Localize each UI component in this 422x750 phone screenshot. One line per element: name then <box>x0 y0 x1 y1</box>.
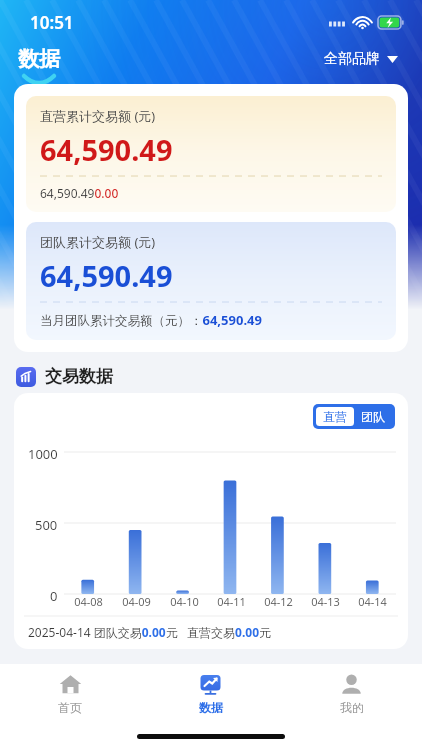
staticText: 04-14 <box>358 594 387 609</box>
staticText: 1000 <box>28 445 58 463</box>
staticText: 04-12 <box>264 594 293 609</box>
button[interactable]: 首页 <box>0 664 140 726</box>
other: 数据 <box>198 672 223 697</box>
staticText: 首页 <box>58 700 82 715</box>
staticText: 2025-04-14 团队交易0.00元 直营交易0.00元 <box>28 624 272 640</box>
other: 首页 <box>58 672 83 697</box>
staticText: 500 <box>35 516 58 534</box>
staticText: 数据 <box>18 46 60 72</box>
staticText: 64,590.49 <box>40 256 173 295</box>
staticText: 0 <box>50 587 58 605</box>
staticText: 04-08 <box>74 594 103 609</box>
staticText: 64,590.490.00 <box>40 185 119 201</box>
staticText: 04-09 <box>122 594 151 609</box>
staticText: 我的 <box>340 700 364 715</box>
button[interactable]: 我的 <box>281 664 422 726</box>
button[interactable]: 全部品牌 <box>318 44 404 74</box>
staticText: 04-11 <box>217 594 246 609</box>
button[interactable]: 直营累计交易额 (元) <box>26 96 396 212</box>
staticText: 04-13 <box>311 594 340 609</box>
staticText: 直营累计交易额 (元) <box>40 107 156 125</box>
staticText: 64,590.49 <box>40 130 173 169</box>
staticText: 10:51 <box>30 11 74 34</box>
button[interactable]: 数据 <box>140 664 281 726</box>
other: 我的 <box>339 672 364 697</box>
button[interactable]: 团队累计交易额 (元) <box>26 222 396 340</box>
staticText: 团队 <box>361 409 385 424</box>
button[interactable]: 直营 <box>313 404 395 429</box>
staticText: 全部品牌 <box>324 50 380 68</box>
staticText: 当月团队累计交易额（元）：64,590.49 <box>40 311 262 329</box>
staticText: 交易数据 <box>45 366 113 387</box>
staticText: 数据 <box>199 700 223 715</box>
staticText: 团队累计交易额 (元) <box>40 233 156 251</box>
staticText: 04-10 <box>170 594 199 609</box>
staticText: 直营 <box>323 409 347 424</box>
